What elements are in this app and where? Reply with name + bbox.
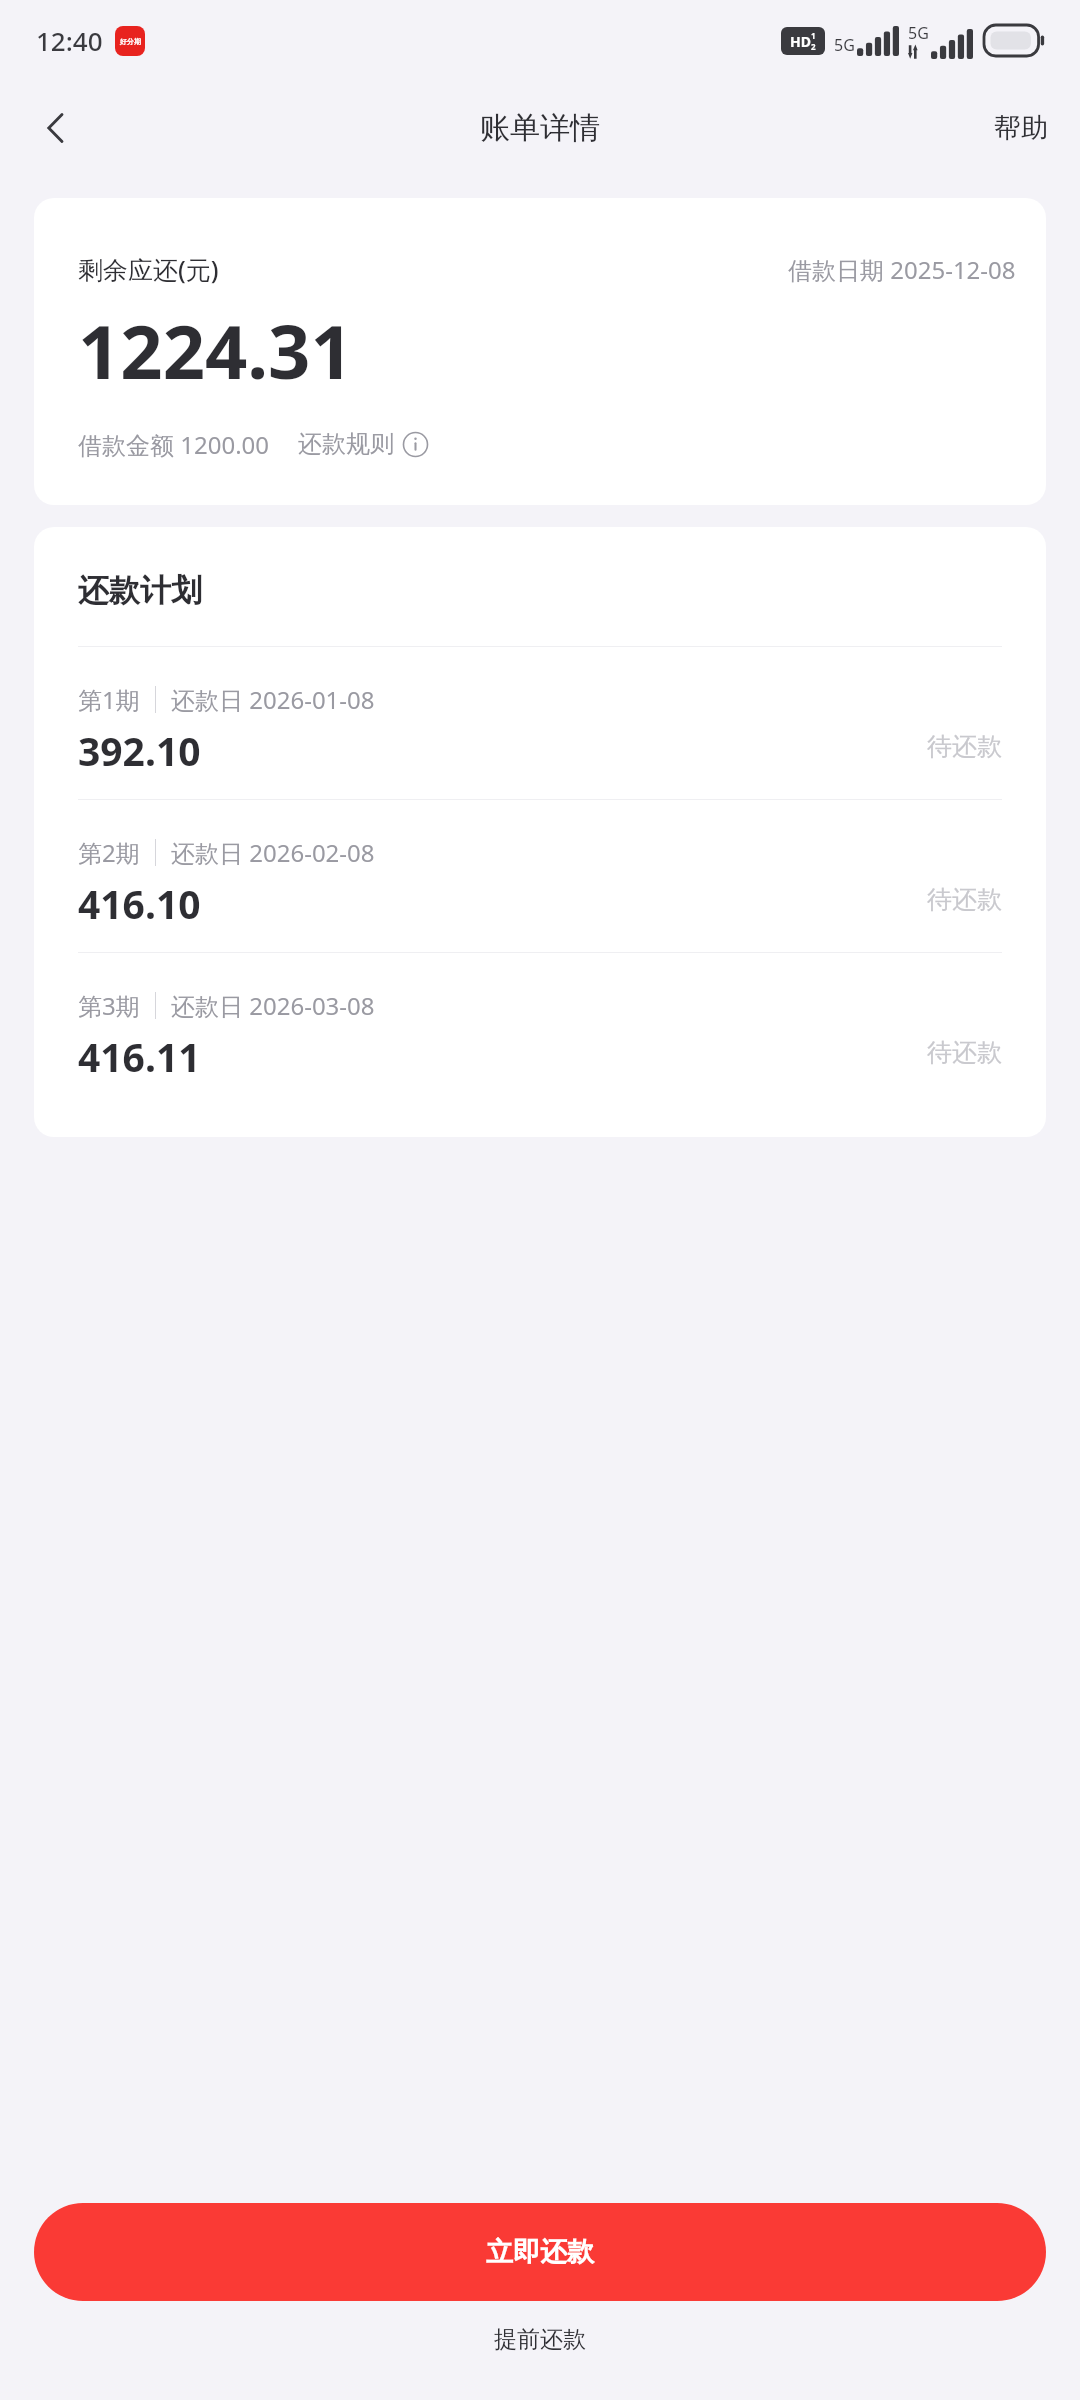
staticText: 1224.31 — [78, 300, 353, 401]
staticText: 好分期 — [120, 37, 141, 46]
staticText: 第2期 — [78, 836, 140, 869]
button[interactable]: 提前还款 — [470, 2315, 610, 2364]
staticText: 还款日 2026-02-08 — [171, 836, 375, 869]
staticText: 剩余应还(元) — [78, 252, 219, 286]
staticText: 待还款 — [927, 731, 1002, 762]
staticText: 待还款 — [927, 884, 1002, 915]
staticText: 还款日 2026-03-08 — [171, 989, 375, 1022]
staticText: 第1期 — [78, 683, 140, 716]
staticText: 416.10 — [78, 877, 201, 930]
staticText: 待还款 — [927, 1037, 1002, 1068]
staticText: 借款金额 1200.00 — [78, 428, 270, 461]
button[interactable]: 第2期 — [34, 800, 1046, 952]
staticText: 账单详情 — [480, 109, 600, 147]
staticText: 392.10 — [78, 724, 201, 777]
button[interactable]: 返回 — [18, 90, 94, 166]
staticText: 还款日 2026-01-08 — [171, 683, 375, 716]
staticText: 5G — [908, 22, 929, 44]
staticText: 提前还款 — [494, 2325, 586, 2354]
button[interactable]: 第1期 — [34, 647, 1046, 799]
staticText: 416.11 — [78, 1030, 201, 1083]
staticText: 2 — [811, 41, 816, 52]
staticText: 立即还款 — [486, 2235, 594, 2269]
button[interactable]: 立即还款 — [34, 2203, 1046, 2301]
button[interactable]: 第3期 — [34, 953, 1046, 1105]
button[interactable]: 还款规则 — [296, 427, 431, 461]
staticText: 第3期 — [78, 989, 140, 1022]
staticText: 12:40 — [36, 23, 103, 58]
button[interactable]: 剩余应还(元) — [34, 198, 1046, 505]
staticText: 1 — [811, 30, 816, 41]
staticText: 帮助 — [994, 111, 1048, 145]
staticText: 还款计划 — [78, 571, 202, 610]
staticText: 5G — [834, 34, 855, 56]
staticText: 借款日期 2025-12-08 — [788, 253, 1016, 286]
staticText: 还款规则 — [298, 429, 394, 459]
button[interactable]: 帮助 — [962, 95, 1080, 161]
staticText: HD — [790, 32, 811, 51]
